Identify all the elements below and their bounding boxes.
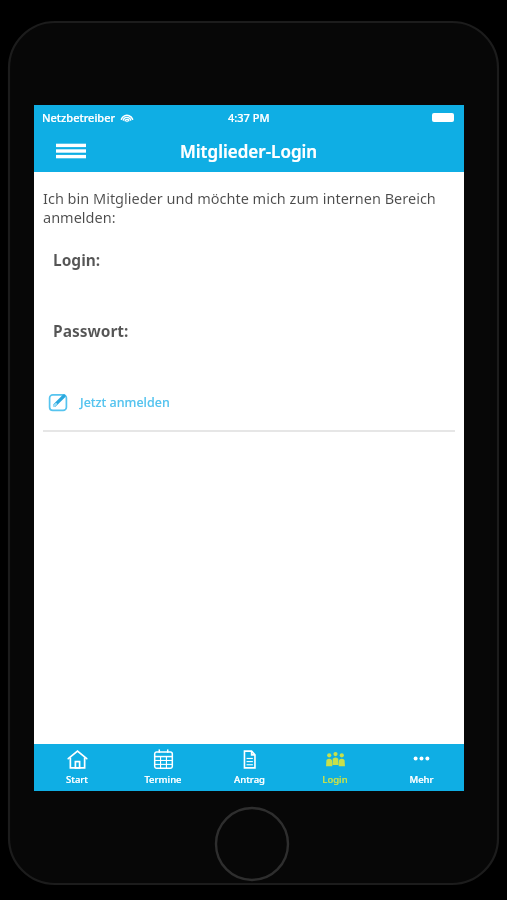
button[interactable]: Mehr	[378, 744, 464, 791]
staticText: Mitglieder-Login	[180, 140, 318, 163]
staticText: Mehr	[409, 773, 434, 786]
button[interactable]: Menu	[54, 136, 88, 166]
staticText: Jetzt anmelden	[80, 394, 170, 411]
button[interactable]: Login	[292, 744, 378, 791]
staticText: Netzbetreiber	[42, 110, 116, 125]
button[interactable]: Antrag	[206, 744, 292, 791]
button[interactable]: Start	[34, 744, 120, 791]
button[interactable]: Jetzt anmelden	[34, 386, 464, 418]
staticText: Ich bin Mitglieder und möchte mich zum i…	[43, 188, 454, 227]
staticText: Antrag	[234, 773, 265, 786]
staticText: 4:37 PM	[228, 110, 270, 125]
staticText: Termine	[144, 773, 182, 786]
staticText: Passwort:	[53, 320, 129, 341]
button[interactable]: Termine	[120, 744, 206, 791]
staticText: Login:	[53, 249, 101, 270]
staticText: Start	[66, 773, 88, 786]
staticText: Login	[322, 773, 348, 786]
